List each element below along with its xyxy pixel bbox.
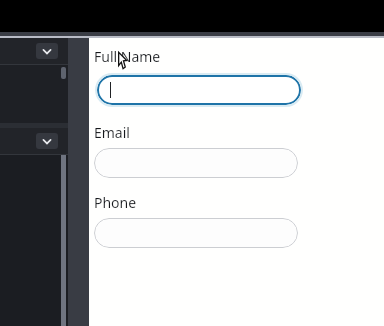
button[interactable]: Expand section bbox=[0, 128, 68, 154]
button[interactable] bbox=[97, 75, 301, 105]
button[interactable]: Expand section bbox=[0, 38, 68, 64]
button[interactable]: Expand section bbox=[36, 133, 58, 149]
button[interactable]: Expand section bbox=[36, 43, 58, 59]
staticText: Email bbox=[94, 123, 130, 142]
button[interactable] bbox=[94, 148, 298, 178]
staticText: Full Name bbox=[94, 47, 161, 66]
staticText: Phone bbox=[94, 193, 137, 212]
button[interactable] bbox=[94, 218, 298, 248]
